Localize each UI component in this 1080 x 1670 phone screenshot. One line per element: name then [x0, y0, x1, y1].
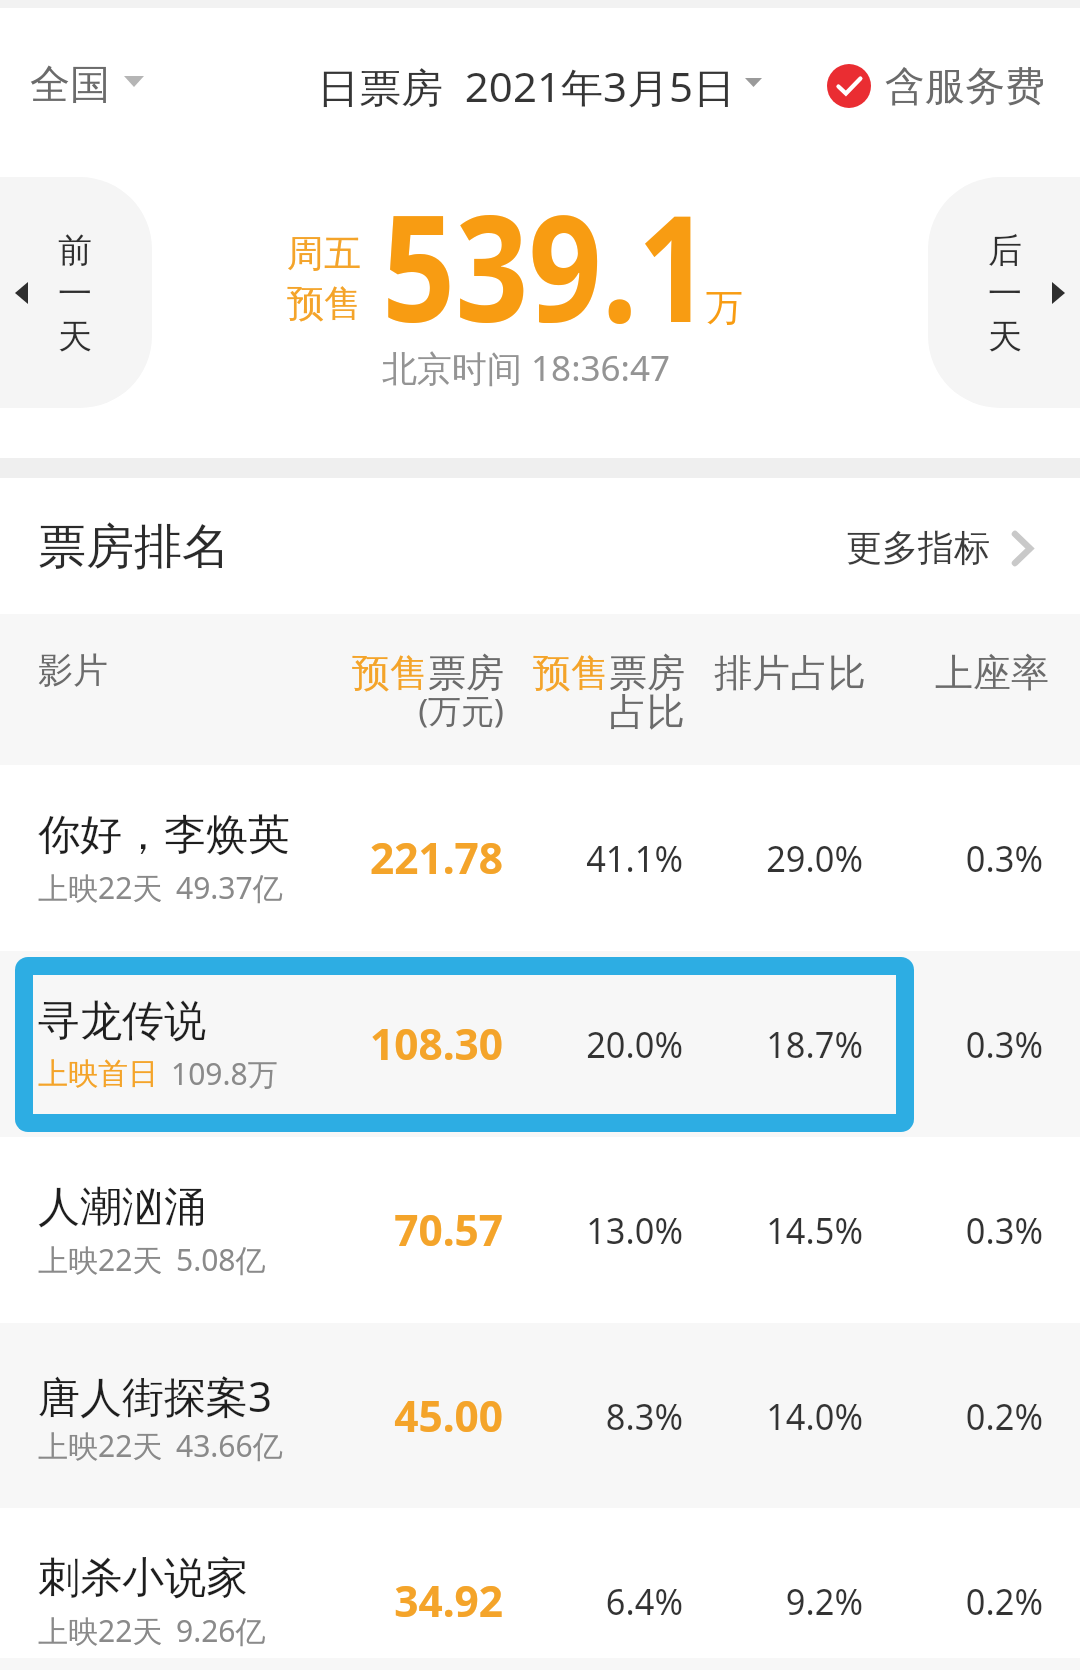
staticText: 0.3% [764, 1018, 1043, 1068]
staticText: 票房排名 [38, 517, 230, 577]
button[interactable]: Previous day [0, 177, 152, 408]
staticText: 上映首日 [38, 1055, 158, 1093]
staticText: 108.30 [207, 1014, 503, 1073]
staticText: 14.5% [584, 1204, 863, 1254]
staticText: 0.3% [764, 1204, 1043, 1254]
button[interactable]: 寻龙传说 [0, 951, 1080, 1137]
staticText: 影片 [38, 648, 108, 692]
staticText: 预售票房 [385, 649, 685, 697]
staticText: (万元) [204, 688, 504, 733]
staticText: 34.92 [207, 1571, 503, 1630]
staticText: 221.78 [207, 828, 503, 887]
staticText: 上映22天 [38, 1425, 163, 1466]
staticText: 6.4% [404, 1575, 683, 1625]
button[interactable]: 更多指标 [826, 490, 1062, 602]
staticText: 上映22天 [38, 867, 163, 908]
button[interactable]: 人潮汹涌 [0, 1137, 1080, 1323]
staticText: 上座率 [749, 649, 1049, 697]
staticText: 43.66亿 [176, 1425, 283, 1466]
button[interactable]: Next day [928, 177, 1080, 408]
staticText: 8.3% [404, 1390, 683, 1440]
staticText: 日票房 2021年3月5日 [317, 59, 736, 114]
staticText: 你好，李焕英 [38, 809, 290, 862]
staticText: 人潮汹涌 [38, 1181, 206, 1234]
staticText: 刺杀小说家 [38, 1552, 248, 1605]
staticText: 9.26亿 [176, 1610, 266, 1651]
staticText: 天 [58, 315, 92, 358]
staticText: 20.0% [404, 1018, 683, 1068]
staticText: 万 [706, 284, 743, 331]
staticText: 5.08亿 [176, 1239, 266, 1280]
staticText: 北京时间 18:36:47 [382, 344, 670, 392]
staticText: 预售 [287, 280, 361, 327]
button[interactable]: 唐人街探案3 [0, 1323, 1080, 1509]
staticText: 天 [988, 315, 1022, 358]
button[interactable]: 日票房 2021年3月5日 [303, 28, 781, 140]
staticText: 排片占比 [566, 649, 866, 697]
staticText: 唐人街探案3 [38, 1367, 273, 1424]
staticText: 45.00 [207, 1386, 503, 1445]
staticText: 70.57 [207, 1200, 503, 1259]
staticText: 前 [58, 229, 92, 272]
staticText: 41.1% [404, 832, 683, 882]
staticText: 9.2% [584, 1575, 863, 1625]
staticText: 109.8万 [171, 1053, 278, 1094]
staticText: 占比 [385, 688, 685, 736]
staticText: 全国 [30, 59, 110, 109]
staticText: 周五 [287, 230, 361, 277]
button[interactable]: 含服务费 [813, 28, 1066, 140]
staticText: 29.0% [584, 832, 863, 882]
staticText: 539.1 [382, 164, 711, 364]
staticText: 0.2% [764, 1390, 1043, 1440]
staticText: 上映22天 [38, 1239, 163, 1280]
staticText: 更多指标 [846, 525, 990, 570]
staticText: 上映22天 [38, 1610, 163, 1651]
staticText: 14.0% [584, 1390, 863, 1440]
staticText: 一 [988, 272, 1022, 315]
staticText: 0.3% [764, 832, 1043, 882]
button[interactable]: 全国 [14, 28, 164, 140]
button[interactable]: 刺杀小说家 [0, 1508, 1080, 1670]
staticText: 13.0% [404, 1204, 683, 1254]
button[interactable]: 你好，李焕英 [0, 765, 1080, 951]
staticText: 寻龙传说 [38, 995, 206, 1048]
staticText: 预售票房 [204, 649, 504, 697]
staticText: 一 [58, 272, 92, 315]
staticText: 含服务费 [885, 61, 1045, 111]
staticText: 49.37亿 [176, 867, 283, 908]
staticText: 0.2% [764, 1575, 1043, 1625]
staticText: 18.7% [584, 1018, 863, 1068]
staticText: 后 [988, 229, 1022, 272]
